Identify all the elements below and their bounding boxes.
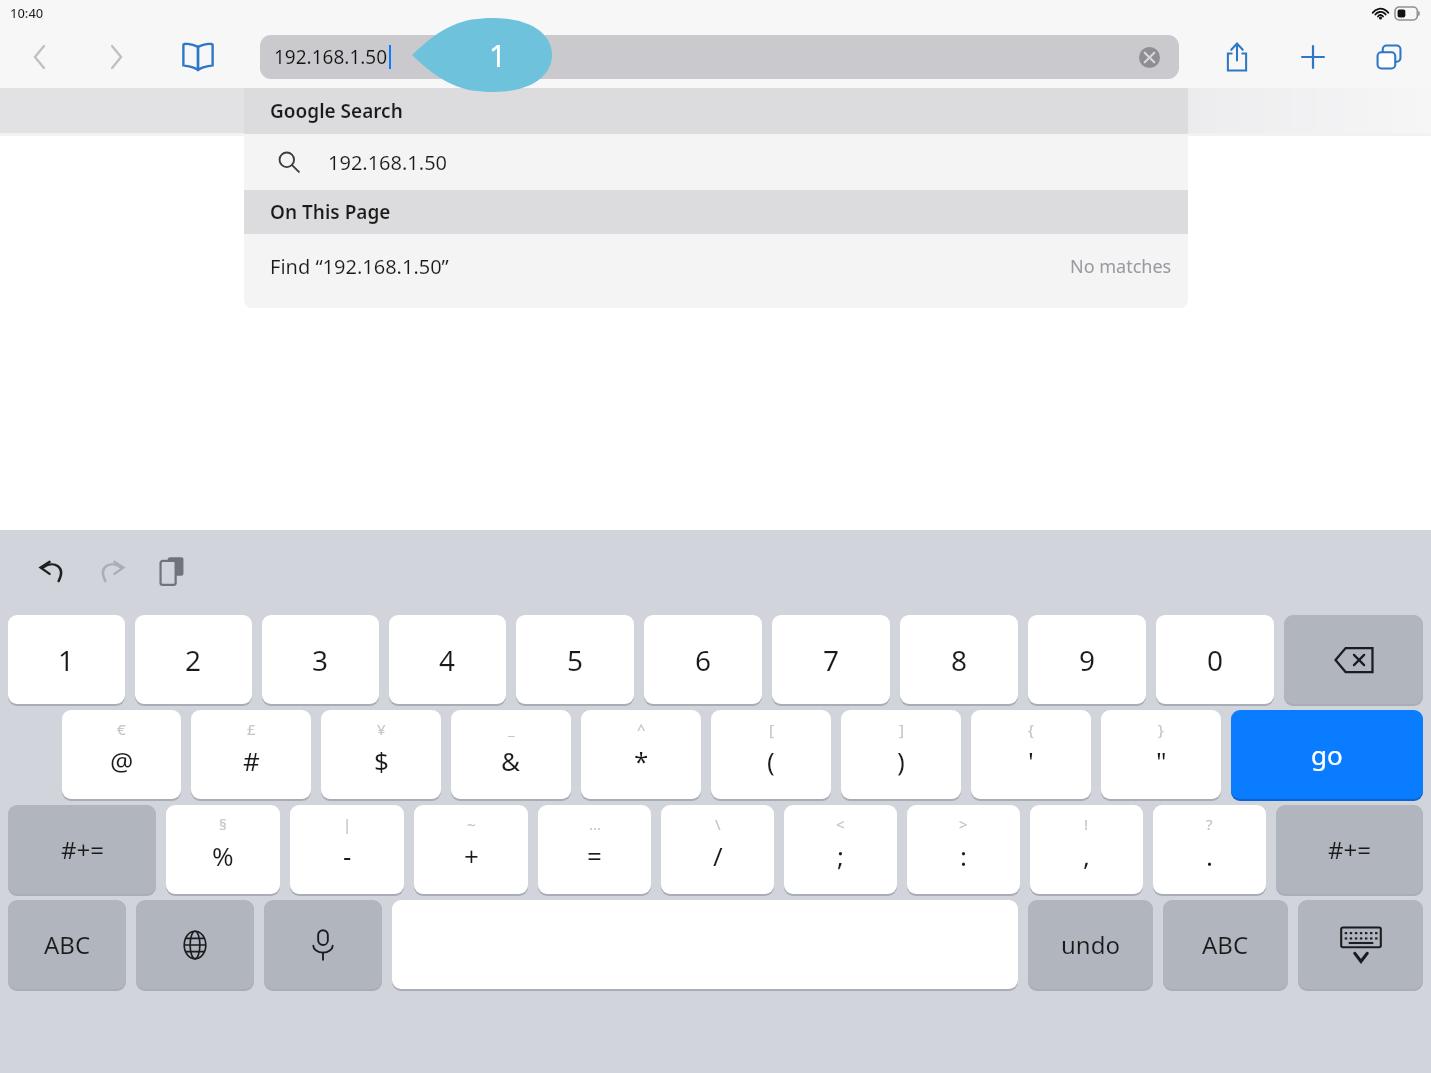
staticText: Safari could not open the page because t… xyxy=(396,270,1035,296)
button[interactable]: Redo xyxy=(88,547,136,595)
staticText: \ xyxy=(715,814,721,834)
staticText: } xyxy=(1158,719,1164,739)
staticText: : xyxy=(960,838,967,873)
staticText: undo xyxy=(1061,928,1120,961)
button[interactable]: £ xyxy=(191,710,311,799)
staticText: #+= xyxy=(61,833,104,866)
button[interactable]: ABC xyxy=(1163,900,1288,989)
staticText: | xyxy=(343,814,352,834)
button[interactable]: undo xyxy=(1028,900,1153,989)
button[interactable]: 3 xyxy=(262,615,379,704)
button[interactable]: Clear text xyxy=(1137,45,1161,69)
button[interactable]: 192.168.1.50 xyxy=(244,134,1188,190)
button[interactable]: #+= xyxy=(1276,805,1423,894)
button[interactable]: [ xyxy=(711,710,831,799)
button[interactable]: Undo xyxy=(28,547,76,595)
button[interactable]: New tab xyxy=(1289,33,1337,81)
staticText: 192.168.1.50 xyxy=(328,149,448,176)
staticText: Find “192.168.1.50” xyxy=(270,253,449,280)
button[interactable]: 192.168.1.50 xyxy=(260,35,1179,79)
button[interactable]: 6 xyxy=(644,615,762,704)
staticText: % xyxy=(212,838,234,873)
staticText: ; xyxy=(837,838,844,873)
staticText: No matches xyxy=(1070,254,1172,279)
button[interactable]: ^ xyxy=(581,710,701,799)
staticText: 9 xyxy=(1079,641,1096,679)
staticText: * xyxy=(634,743,649,778)
staticText: & xyxy=(501,743,521,778)
button[interactable]: ¥ xyxy=(321,710,441,799)
staticText: #+= xyxy=(1328,833,1371,866)
button[interactable]: Find “192.168.1.50” xyxy=(244,234,1188,298)
button[interactable]: Backspace xyxy=(1284,615,1423,704)
button[interactable]: 8 xyxy=(900,615,1018,704)
staticText: > xyxy=(959,814,968,834)
button[interactable]: € xyxy=(62,710,181,799)
staticText: . xyxy=(1206,838,1213,873)
staticText: ABC xyxy=(44,928,91,961)
staticText: Google Search xyxy=(270,98,403,124)
button[interactable]: § xyxy=(166,805,280,894)
button[interactable]: ? xyxy=(1153,805,1266,894)
staticText: ] xyxy=(899,719,904,739)
button[interactable]: > xyxy=(907,805,1020,894)
button[interactable]: < xyxy=(784,805,897,894)
button[interactable]: ] xyxy=(841,710,961,799)
staticText: € xyxy=(117,719,126,739)
staticText: 0 xyxy=(1207,641,1224,679)
staticText: 8 xyxy=(951,641,968,679)
staticText: ! xyxy=(1084,814,1089,834)
button[interactable]: ! xyxy=(1030,805,1143,894)
staticText: 2 xyxy=(185,641,202,679)
staticText: = xyxy=(587,838,602,873)
button[interactable]: ~ xyxy=(414,805,528,894)
button[interactable]: | xyxy=(290,805,404,894)
button[interactable]: … xyxy=(538,805,651,894)
staticText: # xyxy=(243,743,260,778)
button[interactable]: 9 xyxy=(1028,615,1146,704)
button[interactable]: 2 xyxy=(135,615,252,704)
button[interactable]: Share xyxy=(1213,33,1261,81)
button[interactable]: Forward xyxy=(94,35,138,79)
button[interactable]: Bookmarks xyxy=(174,33,222,81)
staticText: , xyxy=(1083,838,1090,873)
staticText: / xyxy=(713,838,723,873)
button[interactable]: { xyxy=(971,710,1091,799)
button[interactable]: Hide keyboard xyxy=(1298,900,1423,989)
button[interactable]: Paste xyxy=(148,547,196,595)
button[interactable]: ABC xyxy=(8,900,126,989)
staticText: $ xyxy=(374,743,389,778)
button[interactable]: } xyxy=(1101,710,1221,799)
staticText: go xyxy=(1311,737,1343,772)
staticText: 10:40 xyxy=(10,4,44,22)
staticText: 5 xyxy=(567,641,584,679)
button[interactable]: go xyxy=(1231,710,1423,799)
button[interactable]: \ xyxy=(661,805,774,894)
staticText: [ xyxy=(769,719,774,739)
staticText: { xyxy=(1028,719,1034,739)
button[interactable]: Back xyxy=(18,35,62,79)
button[interactable]: Dictation xyxy=(264,900,382,989)
button[interactable]: Show tabs xyxy=(1365,33,1413,81)
button[interactable]: 5 xyxy=(516,615,634,704)
staticText: ) xyxy=(897,743,905,778)
button[interactable]: #+= xyxy=(8,805,156,894)
button[interactable]: 1 xyxy=(8,615,125,704)
staticText: 1 xyxy=(58,641,75,679)
button[interactable]: 7 xyxy=(772,615,890,704)
staticText: @ xyxy=(110,743,134,778)
staticText: 6 xyxy=(695,641,712,679)
staticText: - xyxy=(343,838,352,873)
staticText: < xyxy=(836,814,845,834)
staticText: £ xyxy=(247,719,256,739)
staticText: … xyxy=(589,814,601,834)
staticText: ^ xyxy=(637,719,646,739)
staticText: + xyxy=(464,838,479,873)
staticText: On This Page xyxy=(270,199,391,225)
button[interactable]: _ xyxy=(451,710,571,799)
staticText: ( xyxy=(767,743,775,778)
button[interactable]: Next keyboard xyxy=(136,900,254,989)
button[interactable]: 0 xyxy=(1156,615,1274,704)
button[interactable]: 4 xyxy=(389,615,506,704)
